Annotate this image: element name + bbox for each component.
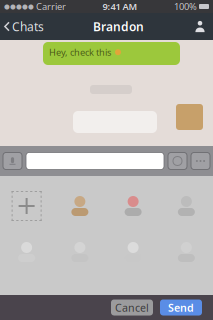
staticText: Send [168,300,194,315]
staticText: Brandon [93,18,144,34]
button[interactable]: Cancel [111,299,153,315]
button[interactable]: Sticker 4 [0,241,53,263]
button[interactable]: Emoji keyboard [168,152,187,169]
button[interactable]: Audio message [3,152,22,169]
button[interactable]: Sticker 6 [106,241,160,263]
button[interactable]: Sticker 5 [53,241,106,263]
staticText: Chats [12,18,44,34]
staticText: Carrier [34,0,66,13]
button[interactable]: Chats [0,13,50,40]
button[interactable]: Contact details [187,13,213,40]
staticText: Hey, check this [49,46,111,58]
button[interactable]: Send [160,299,202,315]
staticText: ●●●●● [4,3,34,10]
button[interactable]: More options [191,152,210,169]
staticText: 9:41 AM [102,0,137,13]
button[interactable]: Add sticker [0,191,53,221]
button[interactable]: Sticker 7 [160,241,213,263]
staticText: Cancel [115,300,149,315]
button[interactable]: Sticker 1 [53,195,106,217]
button[interactable]: Sticker 3 [160,195,213,217]
staticText: 100% [174,0,199,13]
button[interactable]: Sticker 2 [106,195,160,217]
